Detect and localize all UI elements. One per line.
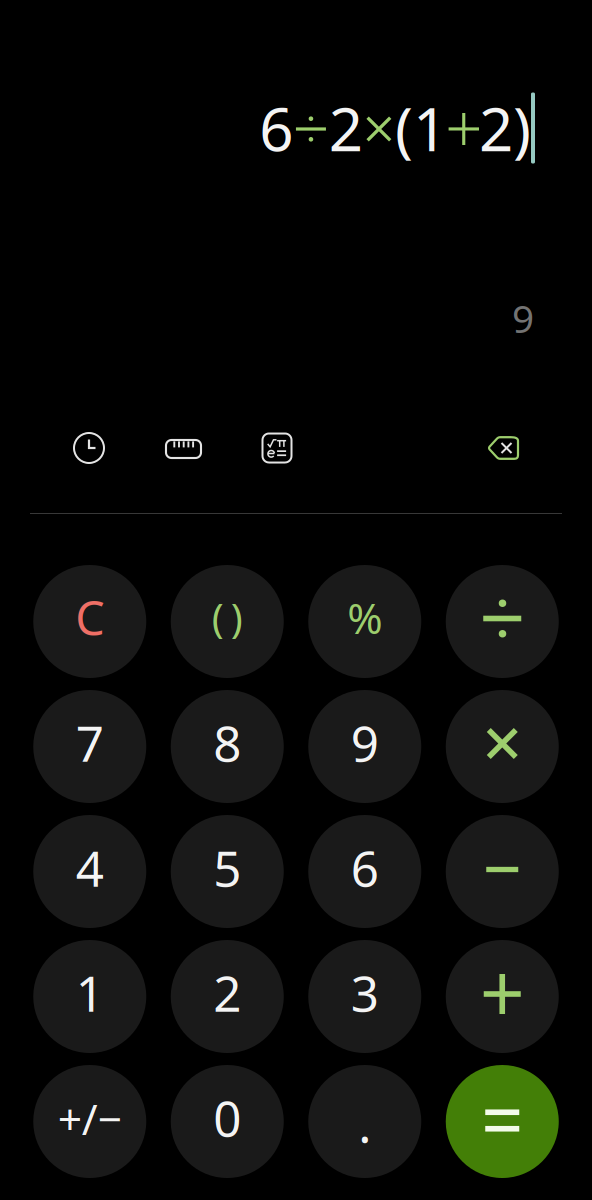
staticText: 7 (76, 710, 104, 775)
button[interactable]: Decimal point (308, 1065, 421, 1178)
staticText: 2 (213, 960, 241, 1025)
staticText: % (347, 589, 382, 646)
button[interactable]: 7 (33, 690, 146, 803)
button[interactable]: Plus (446, 940, 559, 1053)
staticText: 1 (76, 960, 104, 1025)
staticText: 4 (76, 835, 104, 900)
button[interactable]: Percent (308, 565, 421, 678)
staticText: 9 (512, 292, 534, 344)
staticText: 2 (479, 88, 513, 168)
button[interactable]: 4 (33, 815, 146, 928)
button[interactable]: History (72, 431, 106, 465)
button[interactable]: Unit converter (164, 431, 199, 465)
staticText: . (358, 1091, 371, 1156)
button[interactable]: 0 (171, 1065, 284, 1178)
staticText: 2 (329, 88, 363, 168)
staticText: 8 (213, 710, 241, 775)
button[interactable]: Clear (33, 565, 146, 678)
staticText: 5 (213, 835, 241, 900)
staticText: +/− (58, 1090, 122, 1147)
staticText: 0 (213, 1085, 241, 1150)
button[interactable]: Multiply (446, 690, 559, 803)
button[interactable]: Delete (486, 431, 520, 465)
button[interactable]: 5 (171, 815, 284, 928)
button[interactable]: 3 (308, 940, 421, 1053)
button[interactable]: 6 (308, 815, 421, 928)
button[interactable]: 2 (171, 940, 284, 1053)
button[interactable]: Plus minus (33, 1065, 146, 1178)
staticText: C (75, 586, 104, 648)
staticText: ( (395, 88, 413, 168)
staticText: 3 (351, 960, 379, 1025)
button[interactable]: Divide (446, 565, 559, 678)
button[interactable]: 9 (308, 690, 421, 803)
button[interactable]: Parentheses (171, 565, 284, 678)
staticText: 6 (351, 835, 379, 900)
button[interactable]: Scientific (260, 431, 294, 465)
staticText: ) (513, 88, 531, 168)
staticText: ( ) (212, 591, 243, 644)
staticText: 9 (351, 710, 379, 775)
button[interactable]: Minus (446, 815, 559, 928)
button[interactable]: Equals (446, 1065, 559, 1178)
staticText: 6 (259, 88, 293, 168)
staticText: 1 (413, 88, 447, 168)
button[interactable]: 1 (33, 940, 146, 1053)
button[interactable]: 8 (171, 690, 284, 803)
